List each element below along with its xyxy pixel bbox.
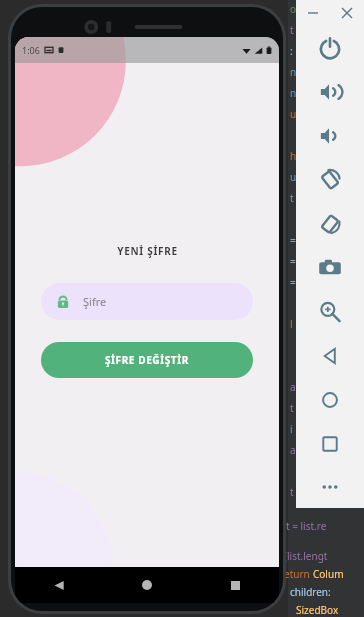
staticText: l: [290, 317, 293, 331]
staticText: o: [290, 2, 297, 16]
staticText: u: [290, 170, 297, 184]
button[interactable]: ŞİFRE DEĞİŞTİR: [41, 342, 253, 378]
staticText: a: [290, 380, 296, 394]
staticText: =: [290, 254, 296, 268]
button[interactable]: Rotate left: [296, 158, 364, 202]
button[interactable]: Zoom: [296, 290, 364, 334]
staticText: i: [290, 422, 293, 436]
staticText: t: [290, 23, 294, 37]
staticText: YENİ ŞİFRE: [117, 244, 178, 258]
staticText: t: [290, 191, 294, 205]
button[interactable]: Volume down: [296, 114, 364, 158]
staticText: children:: [290, 585, 331, 599]
staticText: eturn: [284, 567, 313, 581]
staticText: h: [290, 149, 297, 163]
button[interactable]: Power: [296, 26, 364, 70]
button[interactable]: Home: [296, 378, 364, 422]
staticText: 1:06: [22, 44, 40, 56]
button[interactable]: Rotate right: [296, 202, 364, 246]
button[interactable]: Home: [103, 567, 191, 603]
button[interactable]: Volume up: [296, 70, 364, 114]
button[interactable]: Close: [330, 0, 364, 26]
staticText: =: [290, 233, 296, 247]
staticText: ŞİFRE DEĞİŞTİR: [105, 353, 189, 367]
staticText: n: [290, 86, 297, 100]
staticText: SizedBox: [296, 603, 339, 617]
button[interactable]: Recent apps: [296, 422, 364, 466]
button[interactable]: Take screenshot: [296, 246, 364, 290]
staticText: t = list.re: [286, 519, 327, 533]
staticText: Colum: [313, 567, 344, 581]
staticText: :: [290, 44, 293, 58]
button[interactable]: Back: [296, 334, 364, 378]
staticText: t: [290, 485, 294, 499]
staticText: =: [290, 275, 296, 289]
staticText: a: [290, 443, 296, 457]
button[interactable]: Recent apps: [191, 567, 279, 603]
button[interactable]: More: [296, 466, 364, 508]
button[interactable]: Minimize: [296, 0, 330, 26]
staticText: Şifre: [83, 294, 107, 309]
staticText: t: [290, 401, 294, 415]
staticText: u: [290, 107, 297, 121]
staticText: (list.lengt: [284, 549, 328, 563]
button[interactable]: Back: [15, 567, 103, 603]
button[interactable]: Şifre: [41, 283, 253, 320]
staticText: n: [290, 65, 297, 79]
